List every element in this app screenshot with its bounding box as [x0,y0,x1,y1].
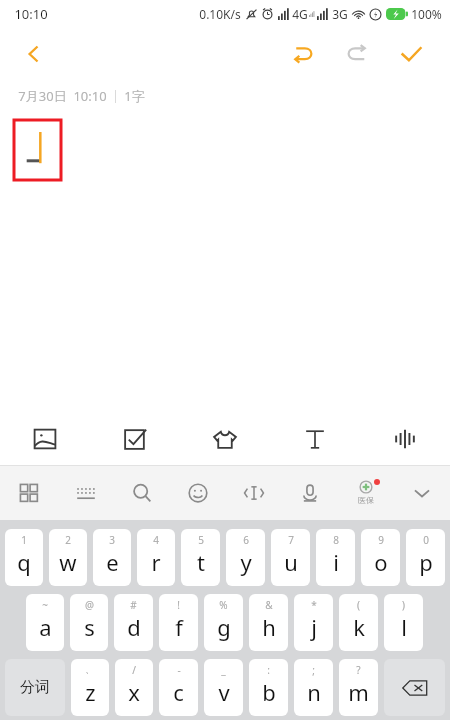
button[interactable]: 分词 [5,659,65,716]
button[interactable]: @ [70,594,108,651]
staticText: ! [177,598,180,612]
staticText: & [265,598,273,612]
staticText: ~ [42,598,48,612]
button[interactable]: Apps [0,465,57,520]
staticText: h [262,612,276,642]
staticText: 5 [198,533,204,547]
staticText: w [59,547,77,577]
staticText: s [84,612,95,642]
staticText: 1 [21,533,27,547]
staticText: # [130,598,137,612]
staticText: 0.10K/s [199,6,241,22]
staticText: 7月30日 [18,87,67,105]
button[interactable]: 4 [137,529,175,586]
staticText: a [39,612,52,642]
staticText: o [374,547,388,577]
staticText: 7 [288,533,294,547]
staticText: ; [312,663,315,677]
staticText: x [128,677,140,707]
button[interactable]: ( [339,594,378,651]
button[interactable]: _ [204,659,243,716]
button[interactable]: 5 [181,529,220,586]
button[interactable]: ! [159,594,198,651]
staticText: j [311,612,317,642]
staticText: @ [85,598,94,612]
staticText: q [17,547,31,577]
button[interactable]: 9 [361,529,400,586]
staticText: e [106,547,119,577]
button[interactable]: Back [18,38,50,70]
staticText: p [419,547,433,577]
button[interactable]: Insert image [0,413,90,465]
button[interactable]: Keyboard layout [57,465,114,520]
button[interactable]: ? [339,659,378,716]
button[interactable]: Checklist [90,413,180,465]
button[interactable]: Move cursor [226,465,282,520]
button[interactable]: - [159,659,198,716]
staticText: l [401,612,407,642]
button[interactable]: 、 [71,659,109,716]
button[interactable]: 7 [271,529,310,586]
staticText: * [311,598,317,612]
staticText: - [177,663,181,677]
staticText: 3G [332,6,348,22]
staticText: 4G [292,6,308,22]
button[interactable]: / [115,659,153,716]
button[interactable]: # [114,594,153,651]
staticText: ? [356,663,361,677]
staticText: z [85,677,96,707]
staticText: i [333,547,339,577]
button[interactable]: 6 [226,529,265,586]
button[interactable]: & [249,594,288,651]
staticText: r [151,547,161,577]
staticText: m [348,677,369,707]
button[interactable]: Backspace [384,659,445,716]
button[interactable]: 1 [5,529,43,586]
staticText: 4 [153,533,159,547]
staticText: ( [357,598,360,612]
staticText: 3 [109,533,115,547]
staticText: 10:10 [73,87,107,105]
staticText: _ [221,663,226,677]
button[interactable]: % [204,594,243,651]
button[interactable]: ; [294,659,333,716]
staticText: ) [402,598,405,612]
button[interactable]: Medical insurance [338,465,394,520]
staticText: n [307,677,321,707]
staticText: 医保 [358,495,374,505]
staticText: 6 [243,533,249,547]
staticText: 10:10 [14,5,48,23]
button[interactable]: 2 [49,529,87,586]
button[interactable]: ~ [26,594,64,651]
button[interactable]: Emoji [170,465,226,520]
button[interactable]: Voice [360,413,450,465]
staticText: 、 [85,663,95,676]
staticText: y [240,547,252,577]
button[interactable]: Text style [270,413,360,465]
staticText: : [267,663,270,677]
staticText: 分词 [20,678,50,697]
button[interactable]: Skin [180,413,270,465]
button[interactable]: Undo [282,33,324,75]
button[interactable]: Redo [336,33,378,75]
button[interactable]: 8 [316,529,355,586]
staticText: v [218,677,230,707]
staticText: k [353,612,365,642]
button[interactable]: 0 [406,529,445,586]
button[interactable]: Voice input [282,465,338,520]
button[interactable]: Hide keyboard [394,465,450,520]
staticText: / [132,663,136,677]
button[interactable]: Done [390,33,432,75]
staticText: c [173,677,184,707]
staticText: 8 [333,533,339,547]
staticText: 9 [378,533,384,547]
button[interactable]: : [249,659,288,716]
button[interactable]: Search [114,465,170,520]
button[interactable]: 3 [93,529,131,586]
staticText: 1字 [124,87,145,105]
button[interactable]: ) [384,594,423,651]
staticText: g [217,612,231,642]
staticText: d [127,612,141,642]
button[interactable]: * [294,594,333,651]
staticText: 2 [65,533,71,547]
